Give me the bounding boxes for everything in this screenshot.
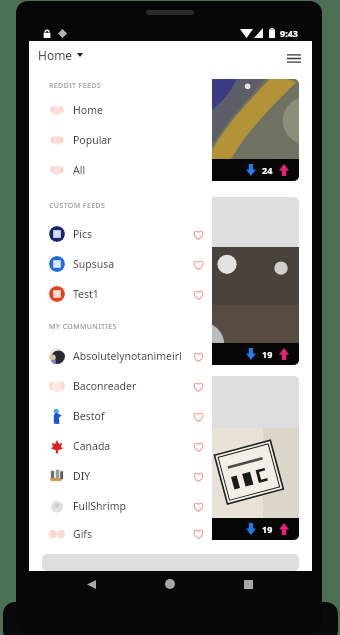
staticText: Gifs — [73, 527, 189, 541]
button[interactable]: 24 — [42, 79, 299, 181]
staticText: 19 — [262, 523, 273, 535]
button[interactable]: Back — [77, 570, 105, 598]
button[interactable]: Gifs — [36, 521, 212, 546]
staticText: CUSTOM FEEDS — [49, 201, 106, 211]
button[interactable]: DIY — [36, 461, 212, 491]
staticText: Bestof — [73, 409, 189, 423]
staticText: Test1 — [73, 287, 189, 301]
button[interactable]: 19 — [42, 197, 299, 365]
button[interactable]: Bestof — [36, 401, 212, 431]
staticText: Baconreader — [73, 379, 189, 393]
staticText: 19 — [262, 348, 273, 360]
staticText: Home — [38, 47, 73, 63]
button[interactable]: Home — [36, 95, 212, 125]
button[interactable]: Pics — [36, 219, 212, 249]
button[interactable]: Popular — [36, 125, 212, 155]
staticText: Canada — [73, 439, 189, 453]
staticText: 24 — [262, 164, 273, 176]
button[interactable]: All — [36, 155, 212, 185]
button[interactable]: Home — [156, 570, 184, 598]
staticText: Pics — [73, 227, 189, 241]
button[interactable]: FullShrimp — [36, 491, 212, 521]
button[interactable]: Test1 — [36, 279, 212, 309]
button[interactable]: Menu — [283, 47, 305, 69]
staticText: Supsusa — [73, 257, 189, 271]
staticText: 1 hour 23 minutes ago — [50, 384, 135, 395]
staticText: 9:43 — [280, 27, 298, 39]
staticText: REDDIT FEEDS — [49, 81, 102, 91]
button[interactable]: 1 hour 23 minutes ago — [42, 376, 299, 540]
staticText: Wish me luck. — [50, 402, 115, 416]
staticText: DIY — [73, 469, 189, 483]
button[interactable]: Absolutelynotanimeirl — [36, 341, 212, 371]
staticText: All — [73, 163, 86, 177]
staticText: Home — [73, 103, 103, 117]
staticText: Absolutelynotanimeirl — [73, 349, 189, 363]
staticText: FullShrimp — [73, 499, 189, 513]
button[interactable]: Canada — [36, 431, 212, 461]
staticText: Popular — [73, 133, 112, 147]
button[interactable]: Recents — [234, 570, 262, 598]
button[interactable]: Supsusa — [36, 249, 212, 279]
staticText: MY COMMUNITIES — [49, 322, 117, 332]
button[interactable]: Home — [38, 47, 83, 63]
button[interactable]: Baconreader — [36, 371, 212, 401]
